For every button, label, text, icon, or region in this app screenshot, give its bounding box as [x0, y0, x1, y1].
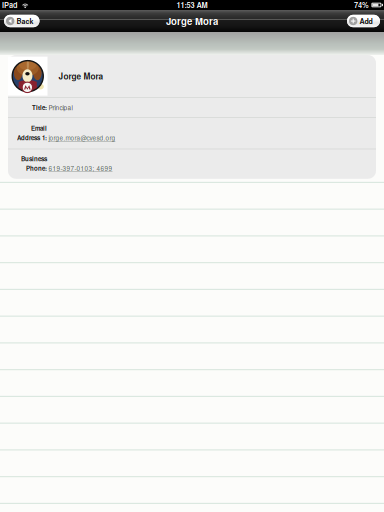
- button[interactable]: Back: [4, 15, 39, 27]
- staticText: Principal: [48, 103, 72, 112]
- staticText: iPad: [2, 0, 18, 10]
- staticText: Title:: [32, 103, 47, 112]
- staticText: jorge.mora@cvesd.org: [48, 133, 115, 142]
- staticText: Address 1:: [17, 133, 47, 142]
- staticText: Add: [360, 16, 373, 26]
- staticText: Phone:: [26, 164, 47, 173]
- staticText: Back: [17, 16, 34, 26]
- staticText: Business: [21, 154, 47, 163]
- staticText: Email: [31, 124, 47, 133]
- button[interactable]: jorge.mora@cvesd.org: [48, 133, 115, 142]
- staticText: 11:53 AM: [176, 0, 207, 10]
- staticText: Jorge Mora: [166, 14, 218, 28]
- button[interactable]: 619-397-0103; 4699: [48, 164, 112, 173]
- staticText: 619-397-0103; 4699: [48, 164, 112, 173]
- staticText: 74%: [354, 0, 369, 10]
- button[interactable]: Add: [347, 15, 380, 27]
- staticText: Jorge Mora: [58, 70, 103, 82]
